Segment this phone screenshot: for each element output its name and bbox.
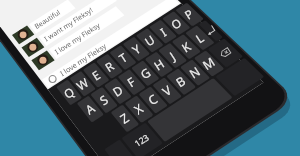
button[interactable]: Phone showing Fleksy keyboard [0, 0, 300, 156]
